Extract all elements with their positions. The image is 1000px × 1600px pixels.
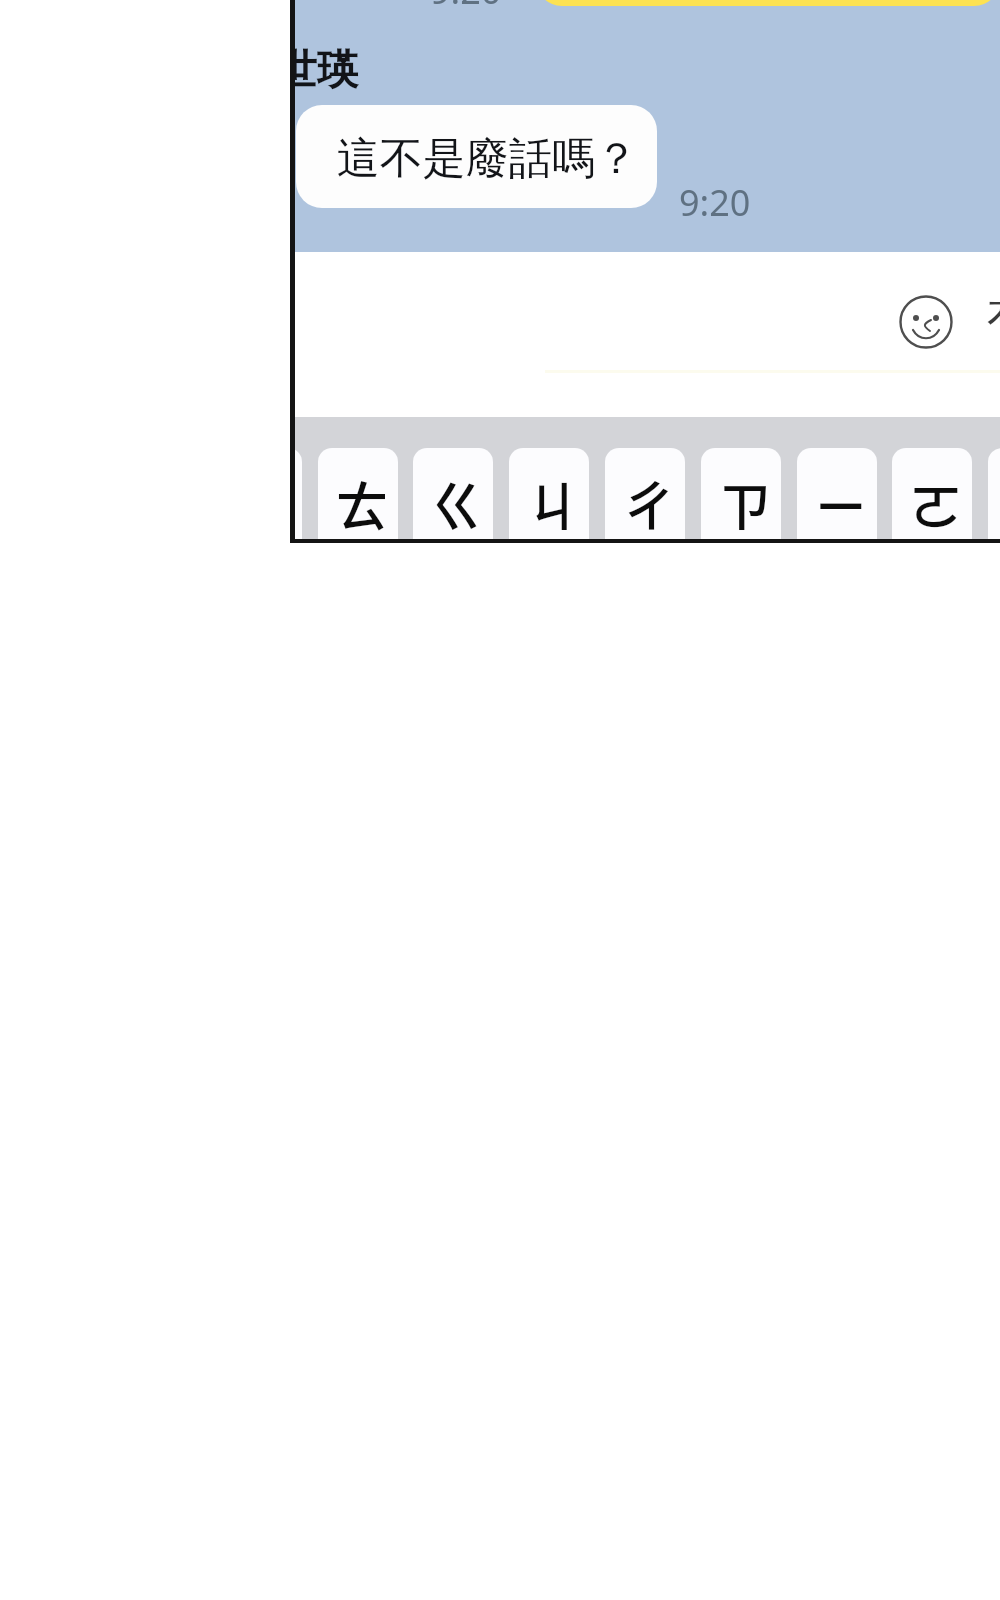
button[interactable]: ㄛ [892, 448, 972, 539]
staticText: ㄧ [814, 464, 868, 539]
staticText: ㄐ [526, 464, 580, 539]
staticText: 9:20 [679, 178, 751, 227]
staticText: ㄛ [909, 464, 963, 539]
staticText: 這不是廢話嗎？ [337, 132, 638, 186]
button[interactable]: 這不是廢話嗎？ [296, 105, 657, 208]
button[interactable]: ㄗ [701, 448, 781, 539]
button[interactable]: ㄍ [413, 448, 493, 539]
staticText: 9:20 [430, 0, 502, 15]
staticText: 世瑛 [295, 45, 358, 97]
button[interactable]: ㄊ [318, 448, 398, 539]
staticText: 有 [987, 289, 1000, 347]
button[interactable]: ㄐ [509, 448, 589, 539]
staticText: ㄊ [335, 464, 389, 539]
button[interactable]: ㄔ [605, 448, 685, 539]
button[interactable]: ㄠ [988, 448, 1000, 539]
button[interactable]: Emoji and stickers [899, 295, 953, 349]
button[interactable]: ㄧ [797, 448, 877, 539]
staticText: ㄔ [622, 464, 676, 539]
staticText: ㄗ [718, 464, 772, 539]
button[interactable]: ㄅ [295, 448, 302, 539]
staticText: ㄍ [430, 464, 484, 539]
